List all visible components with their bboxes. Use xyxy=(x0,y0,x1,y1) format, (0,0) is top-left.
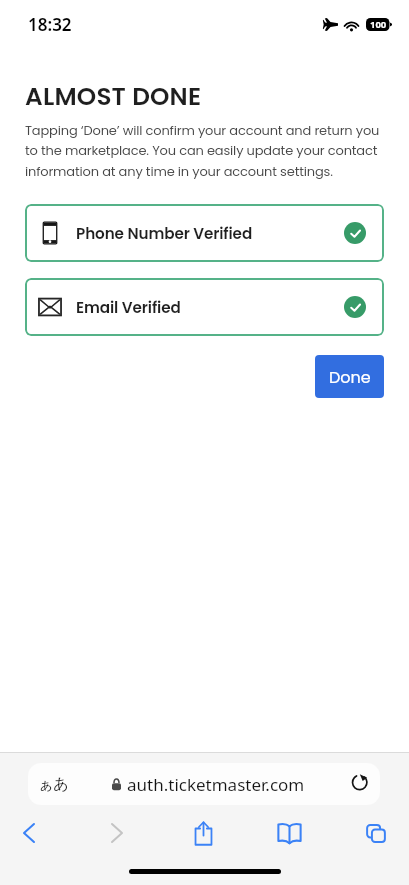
staticText: ぁあ xyxy=(38,775,69,794)
button[interactable]: Share xyxy=(177,816,229,850)
staticText: Email Verified xyxy=(76,297,181,318)
staticText: auth.ticketmaster.com xyxy=(127,773,305,796)
button[interactable]: Forward xyxy=(91,816,143,850)
button[interactable]: Tabs xyxy=(350,816,402,850)
button[interactable]: ぁあ xyxy=(28,763,380,805)
staticText: Tapping ‘Done’ will confirm your account… xyxy=(25,121,387,181)
staticText: Phone Number Verified xyxy=(76,223,253,244)
button[interactable]: Email Verified xyxy=(25,278,384,336)
button[interactable]: Phone Number Verified xyxy=(25,204,384,262)
staticText: ALMOST DONE xyxy=(25,79,202,114)
button[interactable]: Bookmarks xyxy=(263,816,315,850)
button[interactable]: Back xyxy=(3,816,55,850)
button[interactable]: Done xyxy=(315,355,384,398)
staticText: 18:32 xyxy=(28,13,72,36)
staticText: 100 xyxy=(370,18,387,31)
button[interactable]: Reload page xyxy=(349,766,379,802)
staticText: Done xyxy=(329,366,371,388)
